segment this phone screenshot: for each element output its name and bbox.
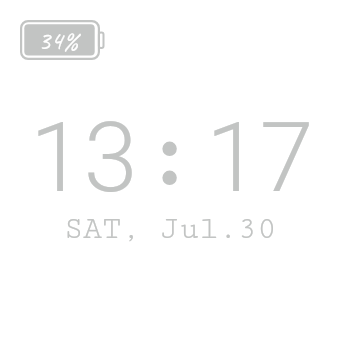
staticText: 13 <box>30 101 138 215</box>
staticText: SAT, Jul.30 <box>0 211 340 340</box>
staticText: 34% <box>38 23 79 57</box>
button[interactable]: Battery 34 percent <box>20 20 104 60</box>
staticText: 17 <box>206 101 314 215</box>
